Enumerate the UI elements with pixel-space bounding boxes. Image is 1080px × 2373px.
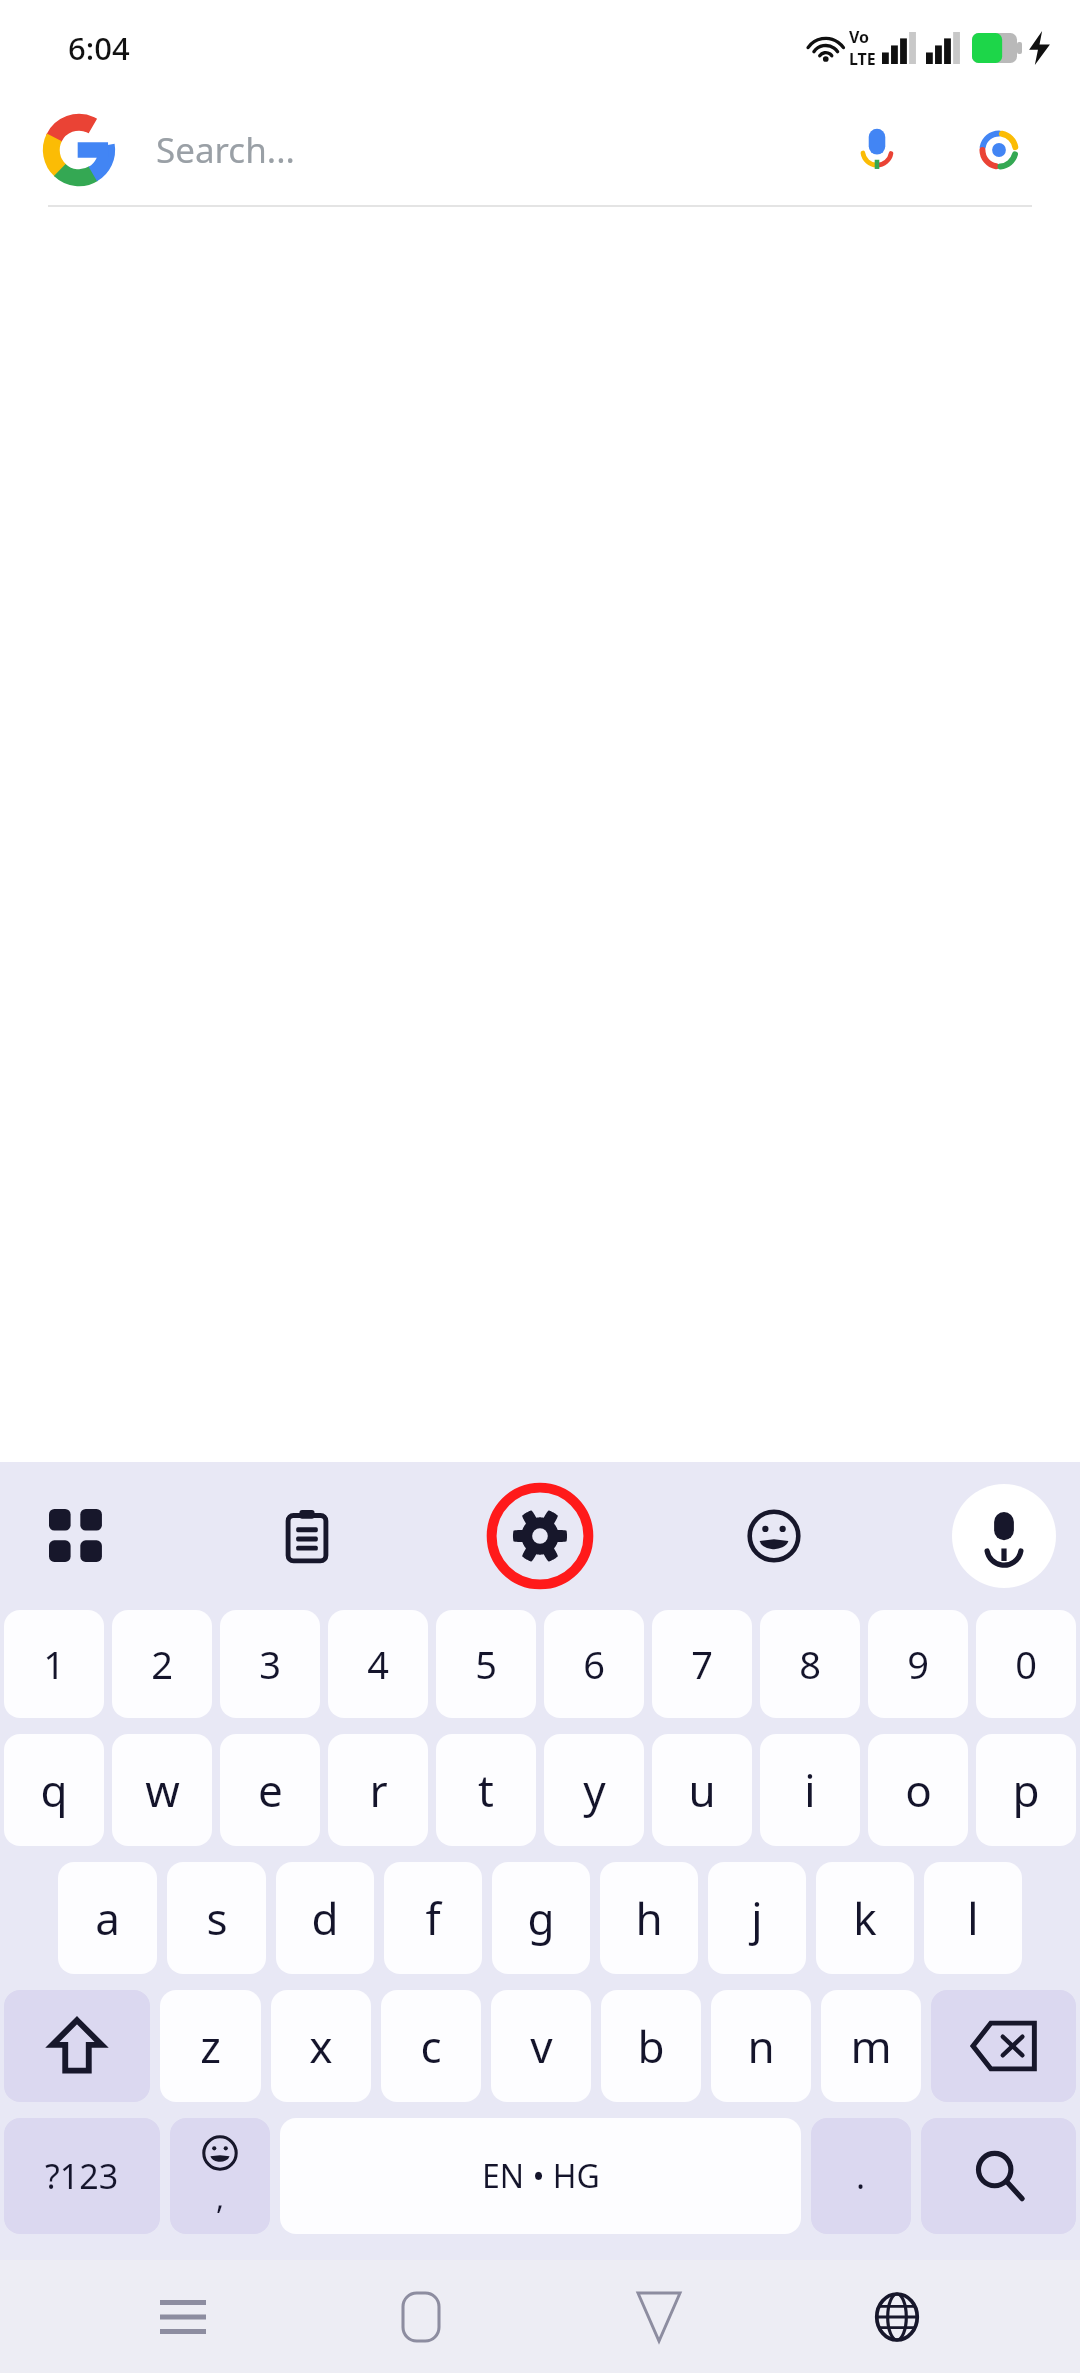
staticText: l bbox=[967, 1888, 979, 1948]
staticText: s bbox=[206, 1888, 228, 1948]
button[interactable]: h bbox=[600, 1862, 698, 1974]
staticText: 9 bbox=[907, 1638, 929, 1690]
staticText: o bbox=[905, 1760, 932, 1820]
staticText: Search... bbox=[156, 126, 842, 174]
button[interactable]: x bbox=[271, 1990, 371, 2102]
staticText: j bbox=[751, 1888, 763, 1948]
button[interactable]: n bbox=[711, 1990, 811, 2102]
button[interactable]: Back bbox=[604, 2262, 714, 2372]
staticText: g bbox=[527, 1888, 555, 1948]
staticText: ?123 bbox=[45, 2153, 119, 2199]
staticText: d bbox=[311, 1888, 339, 1948]
button[interactable]: 7 bbox=[652, 1610, 752, 1718]
staticText: b bbox=[637, 2016, 665, 2076]
button[interactable]: d bbox=[276, 1862, 374, 1974]
button[interactable]: Voice search bbox=[842, 115, 912, 185]
button[interactable]: 8 bbox=[760, 1610, 860, 1718]
button[interactable]: r bbox=[328, 1734, 428, 1846]
staticText: n bbox=[747, 2016, 775, 2076]
button[interactable]: i bbox=[760, 1734, 860, 1846]
staticText: 2 bbox=[151, 1638, 173, 1690]
staticText: t bbox=[478, 1760, 494, 1820]
button[interactable]: j bbox=[708, 1862, 806, 1974]
staticText: 4 bbox=[367, 1638, 389, 1690]
button[interactable]: 9 bbox=[868, 1610, 968, 1718]
staticText: 7 bbox=[691, 1638, 713, 1690]
staticText: 5 bbox=[475, 1638, 497, 1690]
button[interactable]: Voice input bbox=[952, 1484, 1056, 1588]
staticText: EN • HG bbox=[482, 2154, 600, 2198]
staticText: z bbox=[200, 2016, 221, 2076]
button[interactable]: 3 bbox=[220, 1610, 320, 1718]
button[interactable]: Search bbox=[921, 2118, 1076, 2234]
staticText: r bbox=[369, 1760, 388, 1820]
button[interactable]: k bbox=[816, 1862, 914, 1974]
staticText: 0 bbox=[1015, 1638, 1037, 1690]
staticText: h bbox=[635, 1888, 663, 1948]
button[interactable]: g bbox=[492, 1862, 590, 1974]
button[interactable]: 1 bbox=[4, 1610, 104, 1718]
staticText: w bbox=[145, 1760, 180, 1820]
button[interactable]: q bbox=[4, 1734, 104, 1846]
button[interactable]: a bbox=[58, 1862, 157, 1974]
staticText: k bbox=[853, 1888, 877, 1948]
button[interactable]: 2 bbox=[112, 1610, 212, 1718]
button[interactable]: v bbox=[491, 1990, 591, 2102]
button[interactable]: Google Lens bbox=[964, 115, 1034, 185]
staticText: m bbox=[850, 2016, 892, 2076]
staticText: v bbox=[530, 2016, 553, 2076]
button[interactable]: o bbox=[868, 1734, 968, 1846]
button[interactable]: Change keyboard bbox=[842, 2262, 952, 2372]
staticText: p bbox=[1012, 1760, 1040, 1820]
button[interactable]: m bbox=[821, 1990, 921, 2102]
staticText: x bbox=[309, 2016, 333, 2076]
button[interactable]: y bbox=[544, 1734, 644, 1846]
button[interactable]: e bbox=[220, 1734, 320, 1846]
button[interactable]: b bbox=[601, 1990, 701, 2102]
button[interactable]: Settings bbox=[485, 1481, 595, 1591]
staticText: i bbox=[804, 1760, 816, 1820]
staticText: . bbox=[856, 2153, 866, 2199]
button[interactable]: p bbox=[976, 1734, 1076, 1846]
staticText: f bbox=[425, 1888, 441, 1948]
button[interactable]: z bbox=[160, 1990, 261, 2102]
button[interactable]: EN • HG bbox=[280, 2118, 801, 2234]
staticText: u bbox=[688, 1760, 716, 1820]
button[interactable]: Clipboard bbox=[255, 1484, 359, 1588]
button[interactable]: u bbox=[652, 1734, 752, 1846]
staticText: a bbox=[95, 1888, 120, 1948]
button[interactable]: c bbox=[381, 1990, 481, 2102]
staticText: LTE bbox=[849, 48, 876, 70]
button[interactable]: Backspace bbox=[931, 1990, 1076, 2102]
staticText: 6 bbox=[583, 1638, 605, 1690]
button[interactable]: t bbox=[436, 1734, 536, 1846]
staticText: Vo bbox=[849, 26, 870, 48]
button[interactable]: 0 bbox=[976, 1610, 1076, 1718]
button[interactable]: Home bbox=[366, 2262, 476, 2372]
button[interactable]: f bbox=[384, 1862, 482, 1974]
button[interactable]: s bbox=[167, 1862, 266, 1974]
button[interactable]: Shift bbox=[4, 1990, 150, 2102]
button[interactable]: Emoji bbox=[722, 1484, 826, 1588]
button[interactable]: Apps bbox=[24, 1484, 128, 1588]
staticText: c bbox=[420, 2016, 442, 2076]
button[interactable]: ?123 bbox=[4, 2118, 160, 2234]
staticText: 3 bbox=[259, 1638, 281, 1690]
button[interactable]: Emoji and comma bbox=[170, 2118, 270, 2234]
button[interactable]: . bbox=[811, 2118, 911, 2234]
staticText: 8 bbox=[799, 1638, 821, 1690]
staticText: 1 bbox=[43, 1638, 65, 1690]
button[interactable]: l bbox=[924, 1862, 1022, 1974]
button[interactable]: 5 bbox=[436, 1610, 536, 1718]
button[interactable]: Recents bbox=[128, 2262, 238, 2372]
staticText: y bbox=[583, 1760, 606, 1820]
staticText: , bbox=[216, 2177, 225, 2218]
button[interactable]: 4 bbox=[328, 1610, 428, 1718]
staticText: q bbox=[40, 1760, 68, 1820]
button[interactable]: 6 bbox=[544, 1610, 644, 1718]
staticText: 6:04 bbox=[68, 27, 130, 69]
staticText: e bbox=[258, 1760, 283, 1820]
button[interactable]: Search... bbox=[0, 95, 1080, 205]
button[interactable]: w bbox=[112, 1734, 212, 1846]
